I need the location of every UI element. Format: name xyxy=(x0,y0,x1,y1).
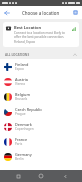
staticText: Espoo xyxy=(15,67,24,71)
button[interactable]: Belgium xyxy=(0,89,82,104)
staticText: Prague xyxy=(15,112,26,116)
staticText: Belgium xyxy=(15,92,31,97)
button[interactable]: Map view xyxy=(70,7,81,18)
staticText: Copenhagen xyxy=(15,127,34,131)
staticText: Best Location xyxy=(14,25,42,30)
button[interactable]: Finland xyxy=(0,59,82,74)
button[interactable]: Austria xyxy=(0,74,82,89)
staticText: Austria xyxy=(15,77,28,82)
staticText: Connect to a location most likely to off… xyxy=(14,31,70,39)
button[interactable]: Czech Republic xyxy=(0,104,82,119)
button[interactable]: Germany xyxy=(0,149,82,164)
staticText: Czech Republic xyxy=(15,107,43,112)
staticText: Vienna xyxy=(15,82,25,86)
button[interactable]: Best Location xyxy=(3,22,79,47)
staticText: Berlin xyxy=(15,157,24,161)
staticText: Finland, Espoo xyxy=(14,40,36,44)
staticText: Finland xyxy=(15,62,29,67)
staticText: Denmark xyxy=(15,122,32,127)
staticText: Paris xyxy=(15,142,23,146)
button[interactable]: Denmark xyxy=(0,119,82,134)
staticText: ALL LOCATIONS xyxy=(5,53,30,57)
button[interactable]: ALL LOCATIONS xyxy=(0,50,82,59)
button[interactable]: Home xyxy=(35,170,47,182)
button[interactable]: Back xyxy=(1,7,12,18)
button[interactable]: Back xyxy=(59,170,71,182)
staticText: Germany xyxy=(15,152,32,157)
button[interactable]: Recent apps xyxy=(12,170,24,182)
staticText: France xyxy=(15,137,28,142)
staticText: Choose a location xyxy=(22,10,60,16)
staticText: Brussels xyxy=(15,97,28,101)
button[interactable]: France xyxy=(0,134,82,149)
